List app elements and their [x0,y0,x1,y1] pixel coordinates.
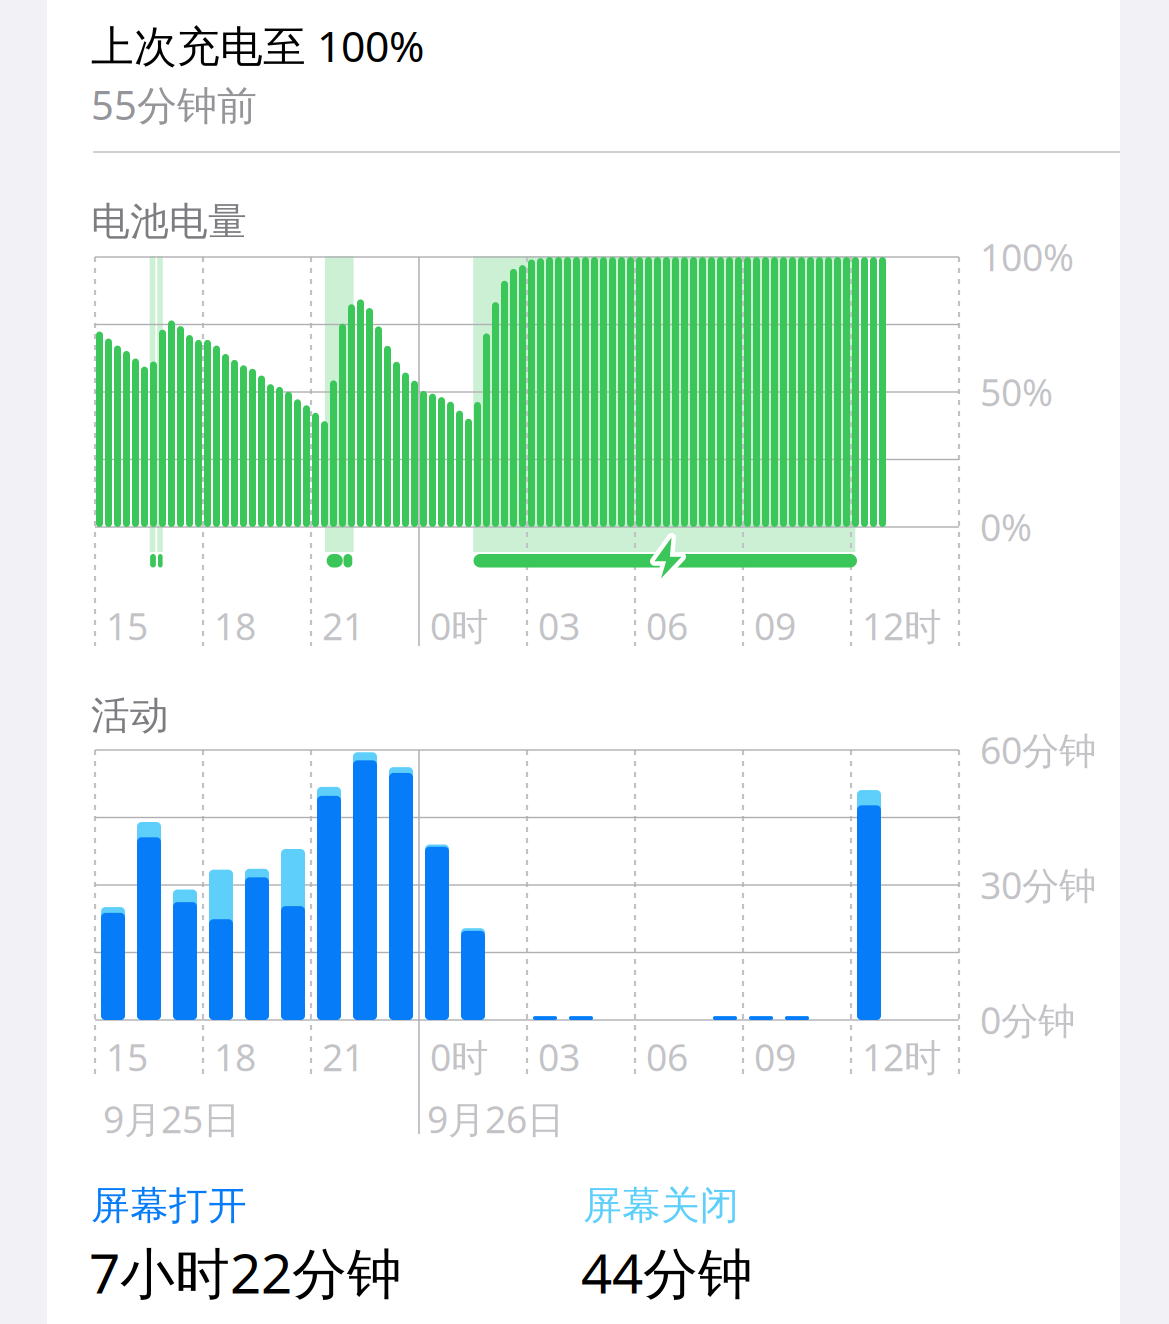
staticText: 15 [106,1032,148,1082]
staticText: 活动 [91,692,169,739]
button[interactable]: 活动图表 [0,0,1169,1324]
staticText: 12时 [862,601,941,651]
staticText: 0时 [430,1032,488,1082]
staticText: 上次充电至 100% [91,17,424,74]
staticText: 03 [538,1032,580,1082]
staticText: 60分钟 [980,725,1096,775]
staticText: 18 [214,1032,256,1082]
staticText: 44分钟 [581,1236,753,1309]
staticText: 100% [980,232,1074,282]
staticText: 21 [322,601,364,651]
staticText: 03 [538,601,580,651]
staticText: 50% [980,367,1053,417]
staticText: 09 [754,601,796,651]
staticText: 18 [214,601,256,651]
staticText: 21 [322,1032,364,1082]
staticText: 9月25日 [103,1094,240,1144]
staticText: 电池电量 [91,198,247,245]
staticText: 06 [646,601,688,651]
staticText: 30分钟 [980,860,1096,910]
staticText: 屏幕打开 [91,1182,247,1229]
staticText: 0时 [430,601,488,651]
staticText: 屏幕关闭 [583,1182,739,1229]
staticText: 7小时22分钟 [89,1236,402,1309]
staticText: 0分钟 [980,995,1075,1045]
staticText: 15 [106,601,148,651]
staticText: 9月26日 [427,1094,564,1144]
staticText: 0% [980,502,1032,552]
staticText: 06 [646,1032,688,1082]
staticText: 55分钟前 [91,78,257,131]
staticText: 12时 [862,1032,941,1082]
button[interactable]: 电池电量图表 [0,0,1169,1324]
staticText: 09 [754,1032,796,1082]
